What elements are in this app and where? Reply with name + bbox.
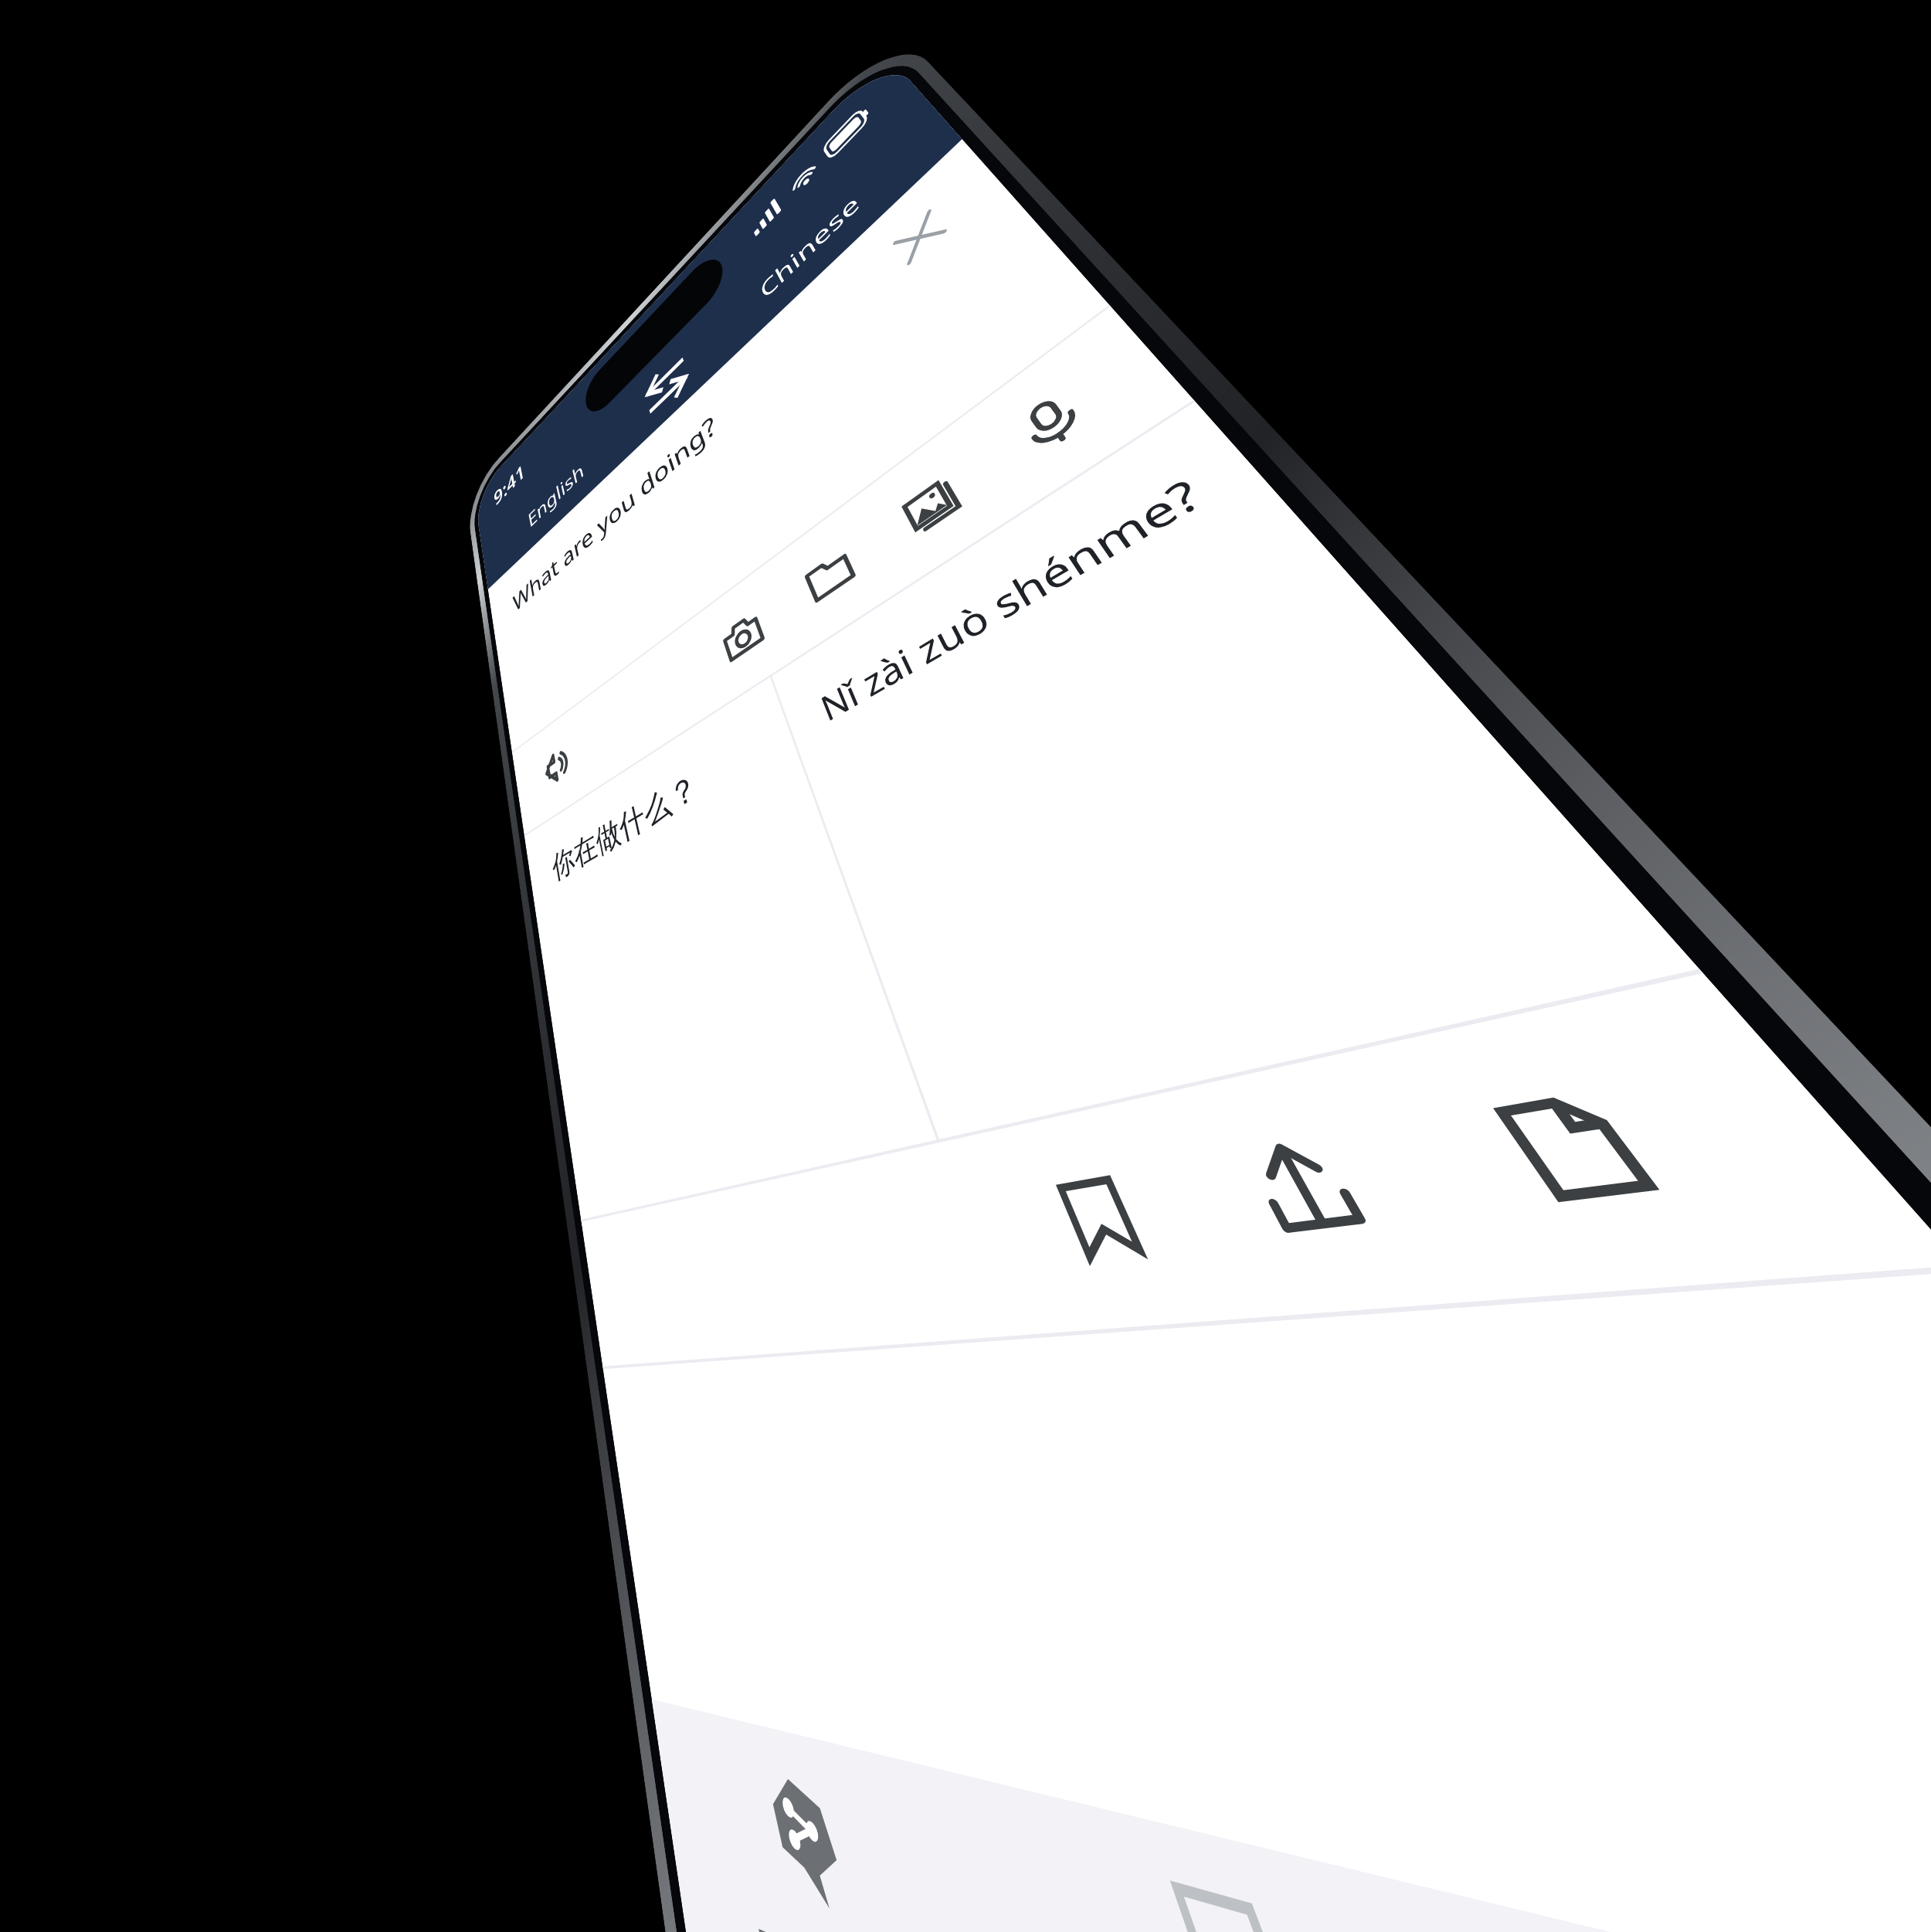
staticText: Nǐ zài zuò shénme? [814, 466, 1214, 731]
button[interactable]: Favorites [957, 1773, 1931, 1932]
staticText: What are you doing? [511, 408, 720, 619]
button[interactable]: Documents [783, 520, 881, 632]
staticText: 9:41 [492, 457, 527, 511]
staticText: 你在做什么？ [550, 764, 703, 889]
staticText: English [526, 456, 586, 533]
button[interactable]: Translate [652, 1699, 1119, 1932]
button[interactable]: Swap languages [630, 332, 707, 440]
button[interactable]: Voice input [982, 356, 1127, 488]
staticText: Translate [754, 1906, 931, 1932]
button[interactable]: Clear text [872, 185, 971, 289]
staticText: Chinese [755, 188, 865, 304]
button[interactable]: Share [1183, 1092, 1447, 1282]
button[interactable]: Camera [703, 585, 786, 688]
button[interactable]: Listen [532, 723, 585, 809]
button[interactable]: Copy [1406, 1037, 1773, 1257]
button[interactable]: Save to favorites [1008, 1133, 1206, 1300]
button[interactable]: Settings [1510, 1908, 1931, 1932]
button[interactable]: Chinese [687, 94, 962, 381]
button[interactable]: Nǐ zài zuò shénme? [772, 401, 1703, 1142]
button[interactable]: 你在做什么？ [524, 677, 938, 1222]
button[interactable]: Gallery [875, 444, 994, 565]
button[interactable]: English [481, 390, 645, 589]
